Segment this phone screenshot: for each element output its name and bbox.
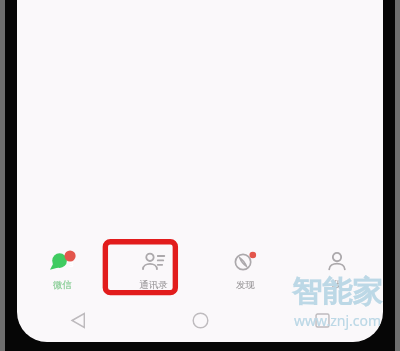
staticText: www.znj.com: [294, 311, 382, 330]
button[interactable]: Back: [60, 302, 96, 338]
button[interactable]: 通讯录: [108, 239, 199, 298]
staticText: 发现: [236, 279, 255, 291]
staticText: 智能家: [292, 273, 382, 311]
staticText: 通讯录: [139, 279, 168, 291]
staticText: 3: [69, 259, 74, 269]
button[interactable]: Recents: [304, 302, 340, 338]
staticText: 微信: [53, 279, 72, 291]
button[interactable]: Home: [182, 302, 218, 338]
button[interactable]: 我: [291, 239, 383, 298]
staticText: 我: [332, 279, 342, 291]
button[interactable]: 3: [17, 239, 108, 298]
button[interactable]: 发现: [199, 239, 291, 298]
